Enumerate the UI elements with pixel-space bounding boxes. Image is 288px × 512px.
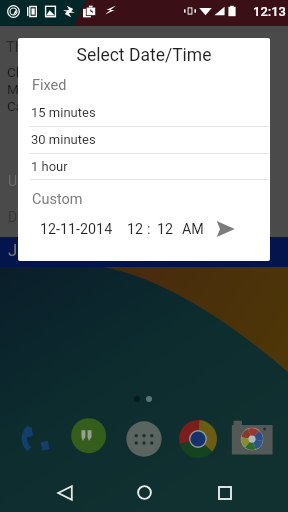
button[interactable]: Camera bbox=[231, 420, 273, 456]
staticText: 12 bbox=[157, 221, 174, 238]
staticText: 15 minutes bbox=[31, 105, 96, 120]
staticText: J bbox=[8, 241, 18, 261]
staticText: 1 hour bbox=[31, 159, 68, 174]
staticText: Fixed bbox=[32, 77, 67, 94]
button[interactable]: Home bbox=[126, 474, 163, 511]
staticText: 12-11-2014 bbox=[40, 221, 113, 238]
staticText: M bbox=[7, 81, 19, 97]
button[interactable]: Apps bbox=[126, 421, 162, 457]
staticText: AM bbox=[182, 221, 204, 238]
staticText: 12 bbox=[127, 221, 144, 238]
staticText: Th bbox=[6, 38, 23, 55]
staticText: Custom bbox=[32, 191, 83, 208]
staticText: Ca bbox=[7, 98, 24, 114]
button[interactable]: 15 minutes bbox=[18, 97, 270, 124]
staticText: Cl bbox=[7, 64, 20, 80]
button[interactable]: Send bbox=[212, 216, 238, 242]
button[interactable]: 12 bbox=[127, 218, 185, 242]
button[interactable]: Phone bbox=[19, 421, 57, 457]
staticText: : bbox=[147, 221, 151, 238]
staticText: U bbox=[8, 173, 18, 190]
button[interactable]: AM bbox=[182, 218, 204, 242]
button[interactable]: 12-11-2014 bbox=[40, 218, 113, 242]
staticText: D bbox=[8, 209, 18, 226]
button[interactable]: Recents bbox=[206, 474, 243, 511]
button[interactable]: Back bbox=[46, 474, 83, 511]
button[interactable]: 30 minutes bbox=[18, 124, 270, 151]
button[interactable]: Hangouts bbox=[71, 418, 107, 454]
button[interactable]: 1 hour bbox=[18, 151, 270, 178]
staticText: 12:13 bbox=[253, 4, 287, 19]
staticText: Select Date/Time bbox=[18, 45, 270, 66]
staticText: 30 minutes bbox=[31, 132, 96, 147]
button[interactable]: Chrome bbox=[179, 420, 217, 458]
